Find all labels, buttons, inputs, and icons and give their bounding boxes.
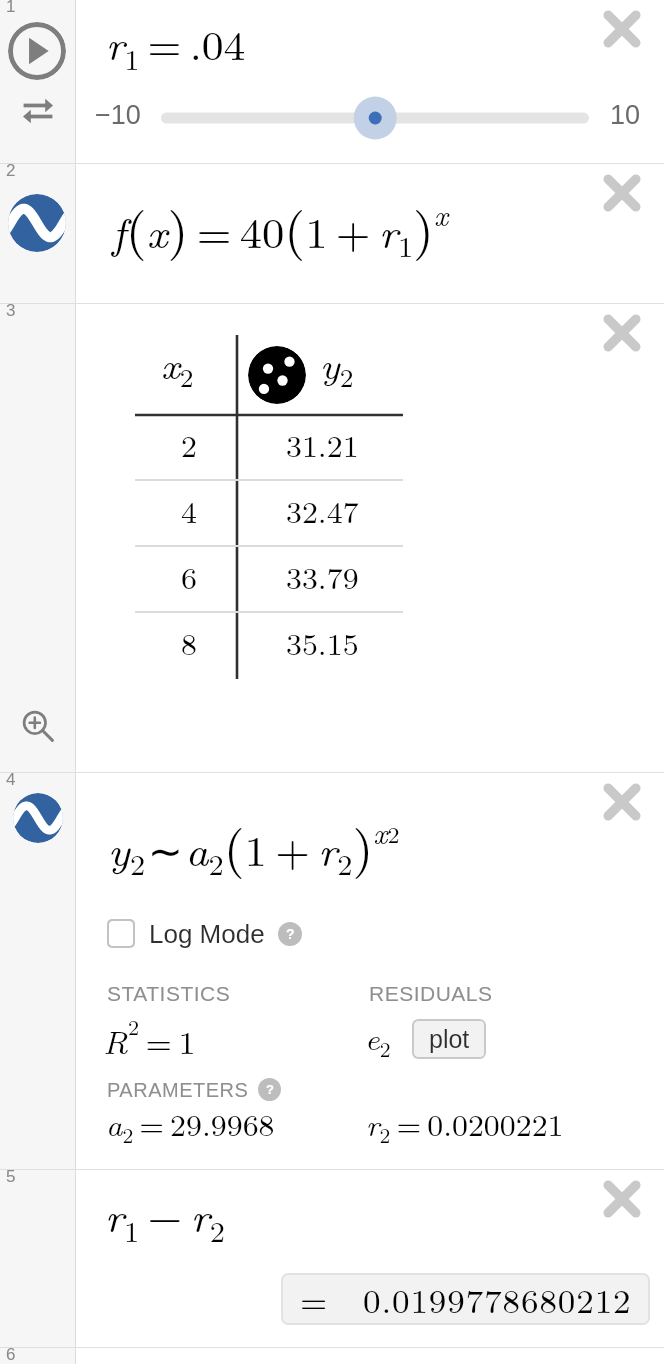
button[interactable]: Delete expression (596, 776, 648, 828)
staticText: −10 (95, 100, 141, 130)
staticText: RESIDUALS (369, 982, 493, 1005)
staticText: 32.47 (286, 489, 359, 532)
staticText: 6 (181, 555, 197, 598)
button[interactable]: plot (412, 1019, 486, 1059)
staticText: 1 (6, 0, 16, 16)
button[interactable]: Toggle graph visibility (8, 194, 66, 252)
staticText: 8 (181, 621, 197, 664)
button[interactable]: Delete expression (596, 1173, 648, 1225)
staticText: 3 (6, 301, 16, 320)
button[interactable]: = 0.0199778680212 (281, 1273, 650, 1325)
staticText: PARAMETERS (107, 1079, 249, 1101)
button[interactable]: Change point style (248, 346, 306, 404)
staticText: 31.21 (286, 423, 359, 466)
button[interactable]: Delete expression (596, 307, 648, 359)
staticText: ? (286, 926, 295, 942)
staticText: Log Mode (149, 919, 265, 948)
button[interactable]: Change animation direction (16, 93, 60, 129)
staticText: STATISTICS (107, 982, 231, 1005)
button[interactable]: Delete expression (596, 3, 648, 55)
staticText: 4 (181, 489, 197, 532)
staticText: y2 (320, 336, 354, 395)
staticText: R2 = 1 (103, 1011, 196, 1063)
staticText: 4 (6, 770, 16, 789)
button[interactable]: Log Mode (107, 919, 302, 948)
staticText: x2 (161, 336, 194, 395)
staticText: plot (429, 1025, 470, 1053)
staticText: r2 = 0.0200221 (366, 1102, 564, 1149)
button[interactable]: Play slider animation (8, 22, 66, 80)
staticText: 6 (6, 1345, 16, 1361)
button[interactable]: Zoom to fit table (16, 704, 60, 748)
staticText: a2 = 29.9968 (106, 1102, 275, 1149)
staticText: y2 ∼ a2(1 + r2)x2 (108, 809, 400, 884)
staticText: r1 = .04 (106, 14, 246, 78)
staticText: 5 (6, 1167, 16, 1186)
button[interactable]: Delete expression (596, 167, 648, 219)
staticText: 2 (6, 161, 16, 180)
staticText: 33.79 (286, 555, 359, 598)
staticText: r1 − r2 (105, 1185, 225, 1250)
staticText: f(x) = 40(1 + r1)x (112, 191, 449, 266)
staticText: 2 (181, 423, 197, 466)
staticText: e2 (365, 1016, 391, 1063)
staticText: 35.15 (286, 621, 359, 664)
staticText: = 0.0199778680212 (300, 1276, 632, 1323)
button[interactable]: Slider for r1 (161, 96, 589, 140)
staticText: 10 (610, 100, 641, 130)
staticText: ? (266, 1082, 274, 1097)
button[interactable]: Toggle regression visibility (13, 793, 63, 843)
